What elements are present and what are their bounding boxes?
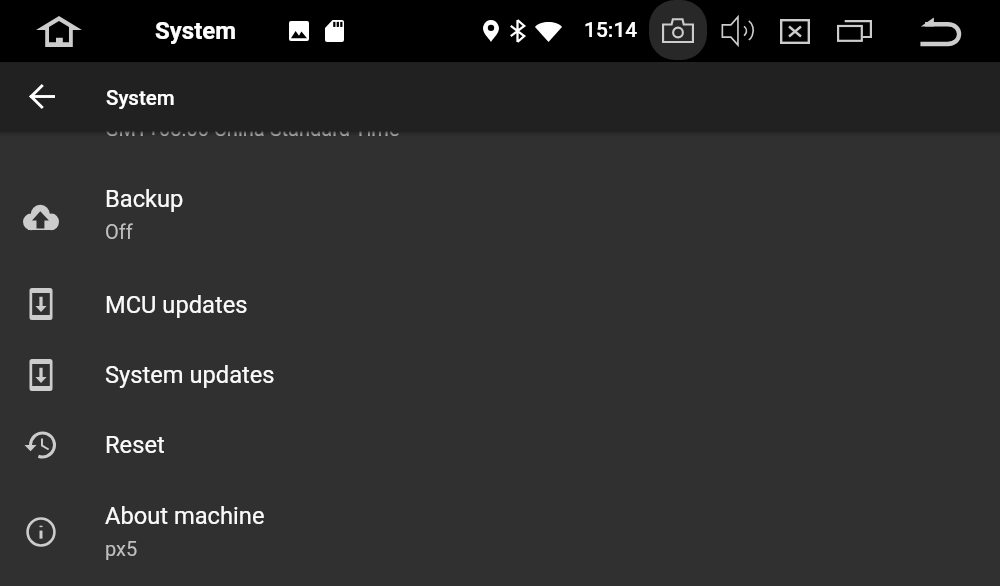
staticText: About machine xyxy=(105,502,265,530)
staticText: GMT+08:00 China Standard Time xyxy=(105,117,400,140)
staticText: System updates xyxy=(105,361,275,389)
button[interactable]: Date & time xyxy=(0,59,1000,164)
staticText: Off xyxy=(105,220,133,243)
button[interactable]: Back xyxy=(908,0,974,62)
button[interactable]: About machine xyxy=(0,479,1000,584)
button[interactable]: Reset xyxy=(0,409,1000,479)
button[interactable]: System updates xyxy=(0,339,1000,409)
staticText: 15:14 xyxy=(584,18,638,43)
button[interactable]: SD card xyxy=(318,0,350,62)
button[interactable]: Close xyxy=(770,0,820,62)
button[interactable]: Gallery xyxy=(282,0,316,62)
button[interactable]: Home xyxy=(30,0,88,62)
button[interactable]: MCU updates xyxy=(0,269,1000,339)
button[interactable]: System xyxy=(144,0,244,62)
button[interactable]: Volume xyxy=(711,0,761,62)
staticText: System xyxy=(106,86,175,110)
staticText: Backup xyxy=(105,185,184,213)
button[interactable]: Backup xyxy=(0,164,1000,269)
staticText: Reset xyxy=(105,431,165,459)
staticText: px5 xyxy=(105,537,138,560)
button[interactable]: Navigate up xyxy=(18,62,66,131)
button[interactable]: Screenshot xyxy=(649,0,707,60)
button[interactable]: Recent apps xyxy=(828,0,880,62)
staticText: Date & time xyxy=(105,81,228,109)
staticText: MCU updates xyxy=(105,291,248,319)
staticText: System xyxy=(155,17,237,45)
